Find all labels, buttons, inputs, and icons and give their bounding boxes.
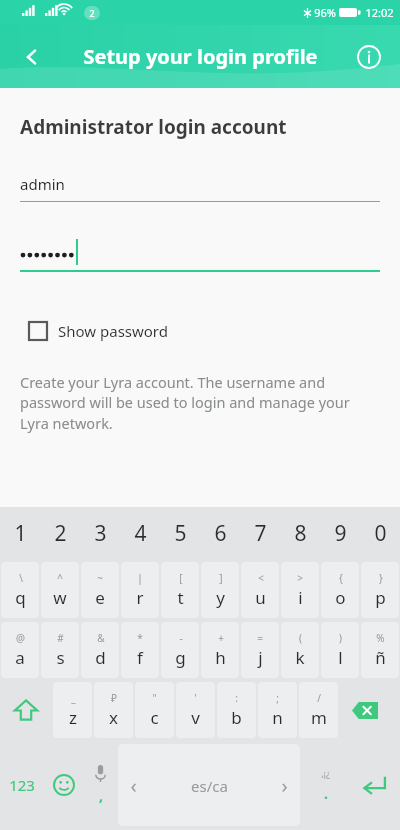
button[interactable]: > bbox=[281, 562, 319, 618]
staticText: 7 bbox=[254, 519, 267, 548]
button[interactable]: | bbox=[121, 562, 159, 618]
staticText: @ bbox=[16, 631, 25, 645]
staticText: es/ca bbox=[191, 776, 228, 796]
staticText: u bbox=[255, 586, 266, 609]
button[interactable]: @ bbox=[1, 622, 39, 678]
button[interactable]: 3 bbox=[81, 509, 119, 558]
staticText: r bbox=[136, 586, 144, 609]
staticText: 4 bbox=[134, 519, 147, 548]
staticText: ] bbox=[219, 571, 223, 585]
staticText: _ bbox=[71, 691, 76, 705]
staticText: ‹ bbox=[130, 772, 137, 799]
button[interactable]: 1 bbox=[1, 509, 39, 558]
staticText: 2 bbox=[89, 7, 95, 19]
staticText: , bbox=[99, 786, 103, 805]
button[interactable]: 8 bbox=[281, 509, 319, 558]
staticText: admin bbox=[20, 174, 65, 194]
button[interactable]: ‹ bbox=[118, 744, 300, 826]
staticText: ; bbox=[276, 691, 279, 705]
button[interactable]: 6 bbox=[201, 509, 239, 558]
button[interactable]: + bbox=[201, 622, 239, 678]
staticText: : bbox=[235, 691, 238, 705]
staticText: ñ bbox=[375, 646, 386, 669]
staticText: ) bbox=[339, 631, 342, 645]
staticText: # bbox=[57, 631, 64, 645]
staticText: \ bbox=[19, 571, 23, 585]
staticText: l bbox=[338, 646, 343, 669]
button[interactable]: * bbox=[121, 622, 159, 678]
button[interactable]: 0 bbox=[361, 509, 399, 558]
other: Delete bbox=[340, 682, 390, 738]
button[interactable]: & bbox=[81, 622, 119, 678]
button[interactable]: admin bbox=[20, 174, 380, 202]
button[interactable]: _ bbox=[53, 682, 92, 738]
button[interactable]: 9 bbox=[321, 509, 359, 558]
staticText: i bbox=[298, 586, 303, 609]
staticText: < bbox=[258, 571, 264, 585]
staticText: { bbox=[339, 571, 343, 585]
staticText: Create your Lyra account. The username a… bbox=[20, 372, 380, 434]
button[interactable]: ) bbox=[321, 622, 359, 678]
button[interactable]: ] bbox=[201, 562, 239, 618]
staticText: + bbox=[218, 631, 224, 645]
staticText: n bbox=[272, 706, 283, 729]
button[interactable]: Show password bbox=[20, 317, 168, 345]
button[interactable]: : bbox=[217, 682, 256, 738]
staticText: k bbox=[295, 646, 305, 669]
button[interactable]: } bbox=[361, 562, 399, 618]
staticText: Setup your login profile bbox=[83, 43, 318, 70]
staticText: s bbox=[56, 646, 65, 669]
staticText: 5 bbox=[174, 519, 187, 548]
staticText: % bbox=[376, 631, 385, 645]
staticText: 9 bbox=[334, 519, 347, 548]
button[interactable]: ,¡¿ bbox=[302, 740, 348, 830]
button[interactable]: % bbox=[361, 622, 399, 678]
staticText: c bbox=[150, 706, 159, 729]
button[interactable]: ₽ bbox=[94, 682, 133, 738]
button[interactable]: = bbox=[241, 622, 279, 678]
button[interactable]: < bbox=[241, 562, 279, 618]
button[interactable]: 4 bbox=[121, 509, 159, 558]
button[interactable]: 5 bbox=[161, 509, 199, 558]
staticText: › bbox=[281, 772, 288, 799]
button[interactable]: Voice input bbox=[84, 740, 116, 830]
button[interactable]: Emoji bbox=[44, 740, 84, 830]
button[interactable]: 123 bbox=[0, 740, 44, 830]
staticText: ^ bbox=[57, 571, 63, 585]
button[interactable]: # bbox=[41, 622, 79, 678]
button[interactable]: ' bbox=[176, 682, 215, 738]
button[interactable]: Shift bbox=[1, 682, 51, 738]
button[interactable]: 7 bbox=[241, 509, 279, 558]
button[interactable]: ; bbox=[258, 682, 297, 738]
staticText: h bbox=[215, 646, 226, 669]
button[interactable]: ~ bbox=[81, 562, 119, 618]
button[interactable]: " bbox=[135, 682, 174, 738]
staticText: 12:02 bbox=[365, 5, 394, 20]
button[interactable]: \ bbox=[1, 562, 39, 618]
button[interactable]: { bbox=[321, 562, 359, 618]
button[interactable]: ^ bbox=[41, 562, 79, 618]
staticText: 1 bbox=[14, 519, 27, 548]
button[interactable]: [ bbox=[161, 562, 199, 618]
staticText: v bbox=[191, 706, 200, 729]
button[interactable]: Enter bbox=[348, 740, 400, 830]
staticText: } bbox=[379, 571, 383, 585]
staticText: | bbox=[137, 571, 143, 585]
button[interactable]: Info bbox=[348, 36, 390, 78]
staticText: f bbox=[137, 646, 143, 669]
staticText: > bbox=[297, 571, 303, 585]
staticText: t bbox=[177, 586, 184, 609]
button[interactable]: 2 bbox=[41, 509, 79, 558]
staticText: q bbox=[15, 586, 26, 609]
staticText: . bbox=[324, 784, 328, 803]
button[interactable]: ( bbox=[281, 622, 319, 678]
staticText: ' bbox=[194, 691, 197, 705]
button[interactable] bbox=[20, 239, 380, 272]
staticText: & bbox=[97, 631, 105, 645]
button[interactable]: / bbox=[299, 682, 338, 738]
button[interactable]: Back bbox=[10, 35, 54, 79]
staticText: * bbox=[137, 631, 143, 645]
staticText: a bbox=[15, 646, 25, 669]
button[interactable]: - bbox=[161, 622, 199, 678]
button[interactable]: Delete bbox=[340, 682, 390, 738]
